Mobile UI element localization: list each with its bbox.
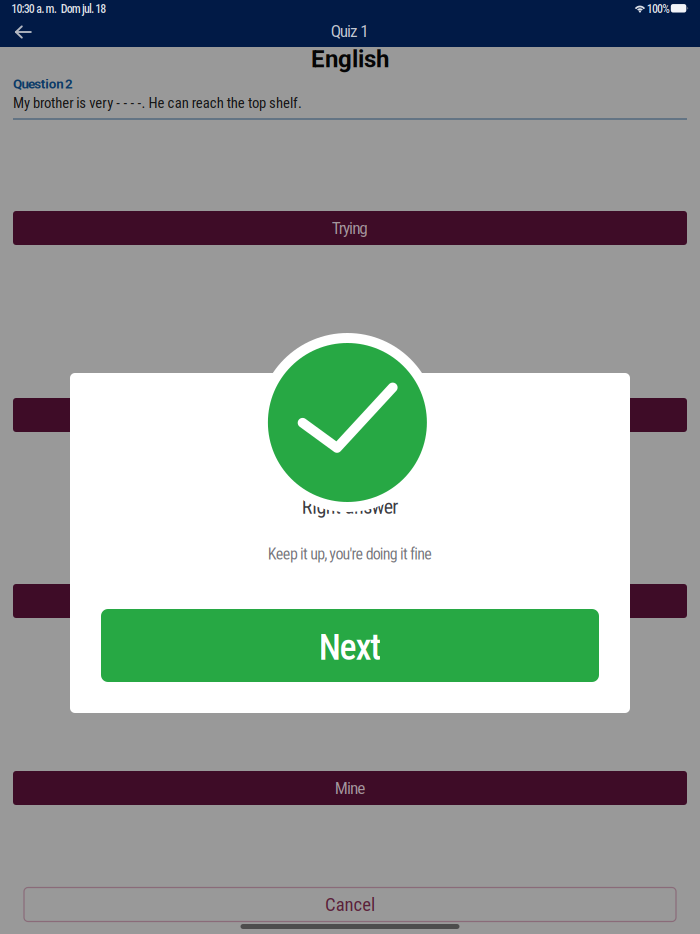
button[interactable]: Tall <box>13 584 687 618</box>
staticText: My brother is very - - - -. He can reach… <box>13 94 302 112</box>
staticText: Next <box>319 626 381 669</box>
staticText: Trying <box>332 218 368 238</box>
staticText: English <box>311 45 389 73</box>
staticText: 100% <box>647 2 670 16</box>
staticText: Quiz 1 <box>331 21 369 41</box>
button[interactable]: Next <box>101 609 599 682</box>
button[interactable]: Cancel <box>24 887 676 921</box>
button[interactable]: Trying <box>13 211 687 245</box>
staticText: Mine <box>335 778 365 798</box>
staticText: Tall <box>339 591 361 611</box>
staticText: 10:30 a. m. <box>11 2 57 16</box>
staticText: Tallest <box>330 405 370 425</box>
staticText: Dom jul. 18 <box>61 2 106 16</box>
staticText: Question 2 <box>13 76 73 92</box>
staticText: Right answer <box>302 495 398 519</box>
button[interactable]: Back <box>3 18 43 46</box>
staticText: Cancel <box>325 894 375 915</box>
staticText: Keep it up, you're doing it fine <box>268 545 432 563</box>
button[interactable]: Tallest <box>13 398 687 432</box>
button[interactable]: Mine <box>13 771 687 805</box>
